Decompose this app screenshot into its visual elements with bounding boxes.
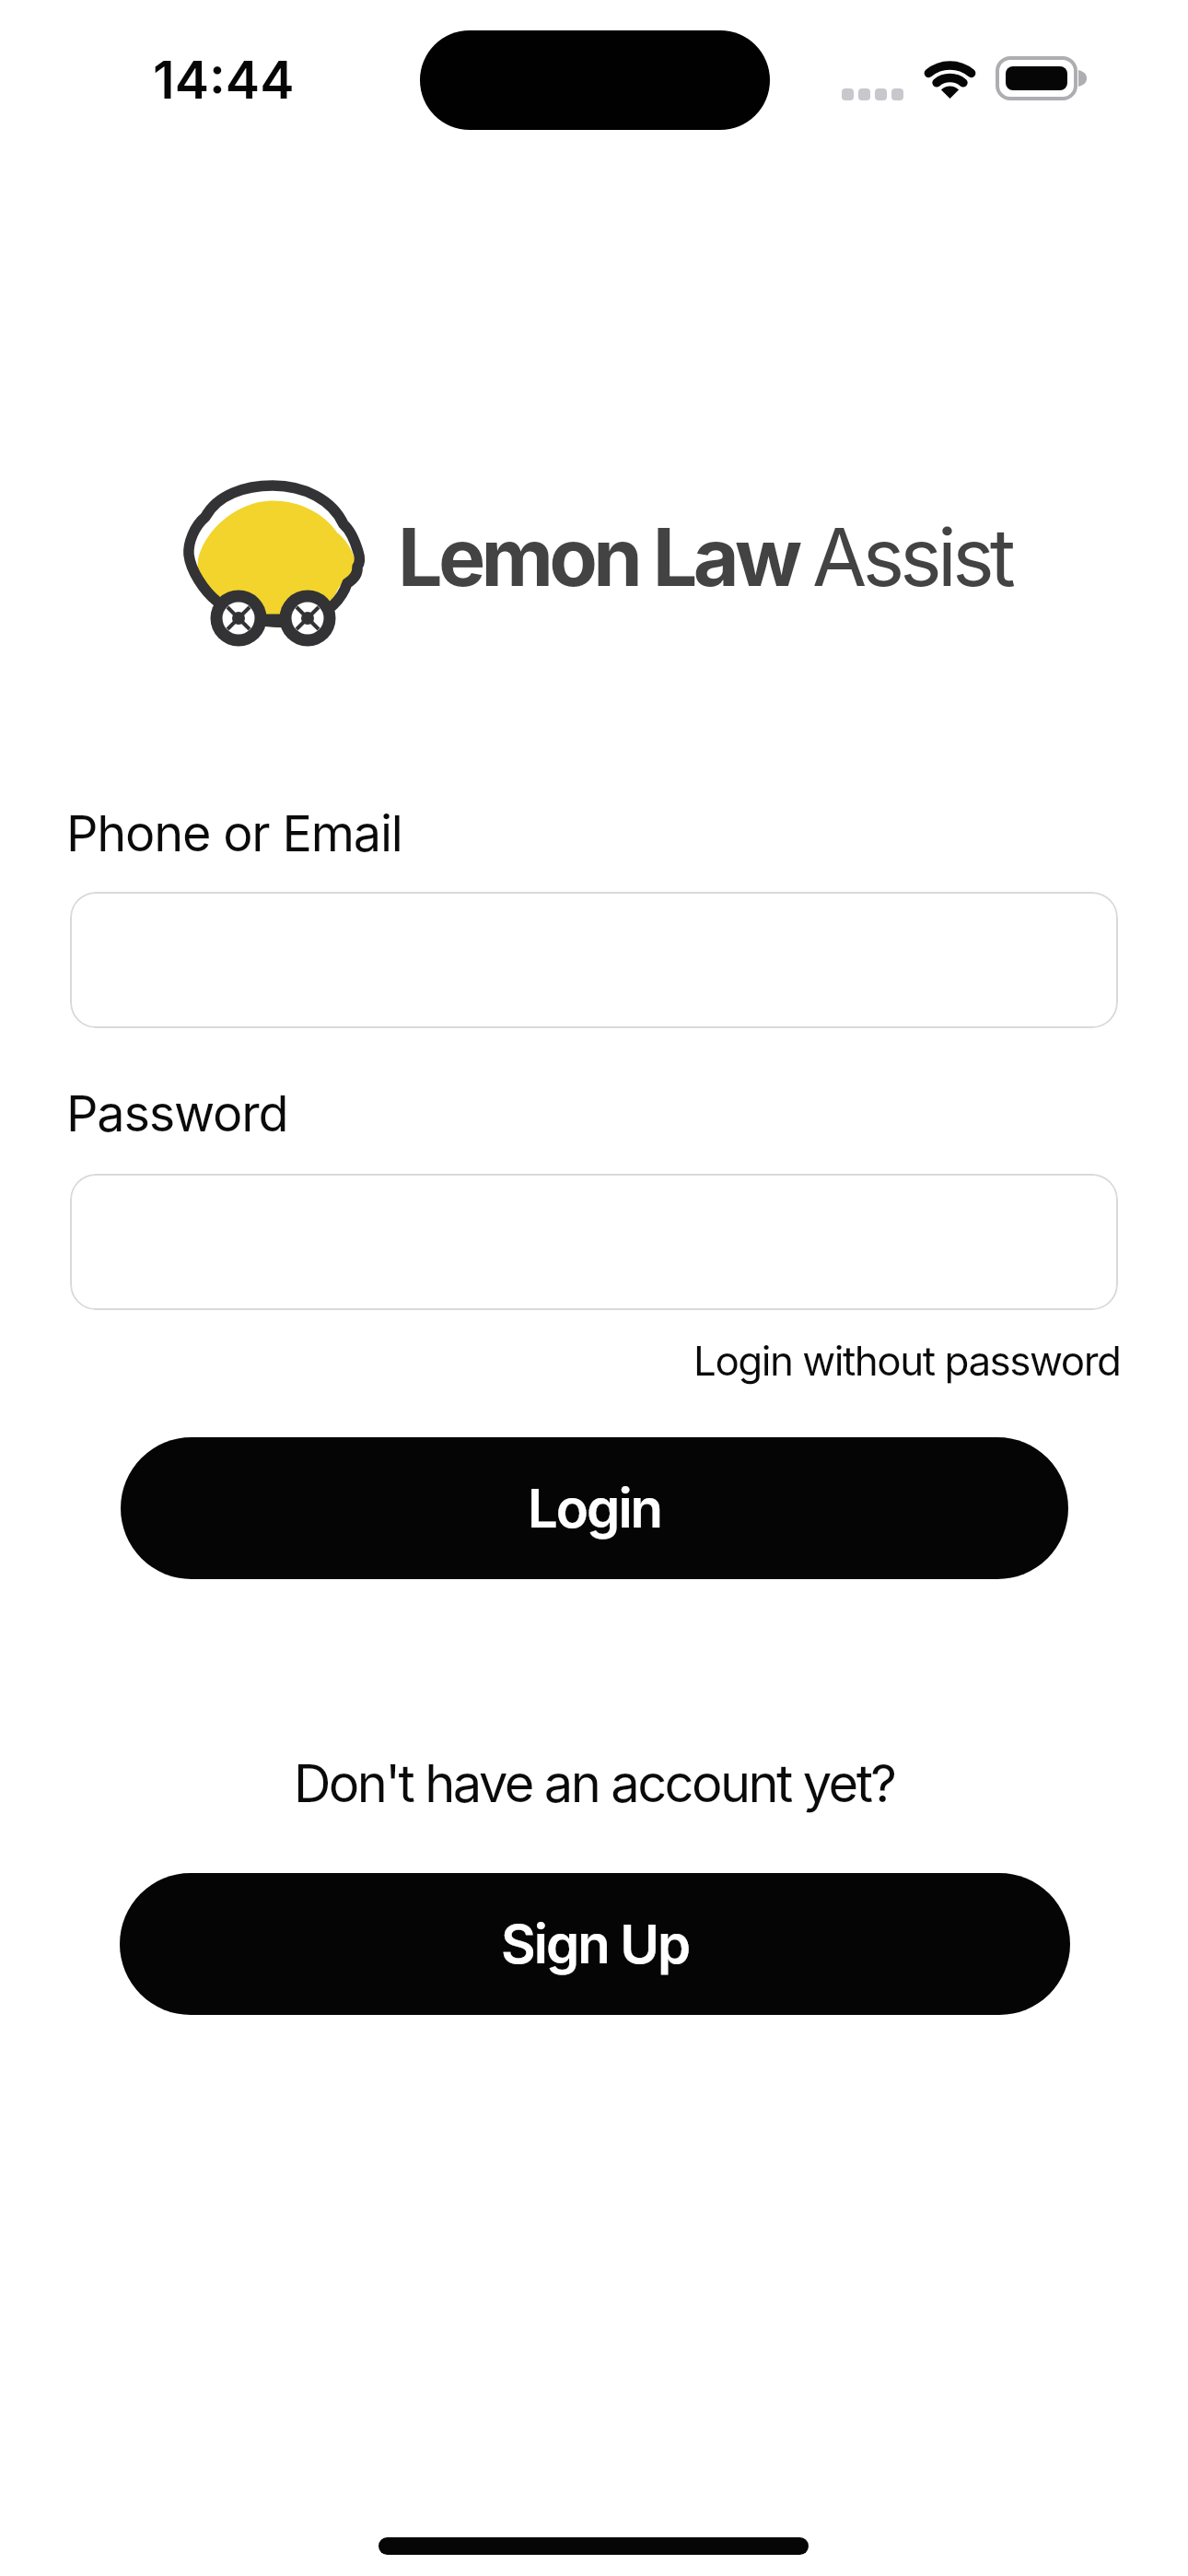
button[interactable]: Login [121,1437,1068,1579]
button[interactable]: Login without password [693,1336,1121,1385]
staticText: 14:44 [153,49,295,111]
button[interactable]: Sign Up [120,1873,1070,2015]
button[interactable] [70,1174,1118,1310]
button[interactable] [70,892,1118,1028]
staticText: Sign Up [501,1912,690,1976]
staticText: Don't have an account yet? [294,1752,895,1815]
staticText: Phone or Email [66,803,402,863]
staticText: Password [66,1083,288,1143]
staticText: Login [528,1476,662,1540]
staticText: Lemon Law Assist [398,509,1012,605]
